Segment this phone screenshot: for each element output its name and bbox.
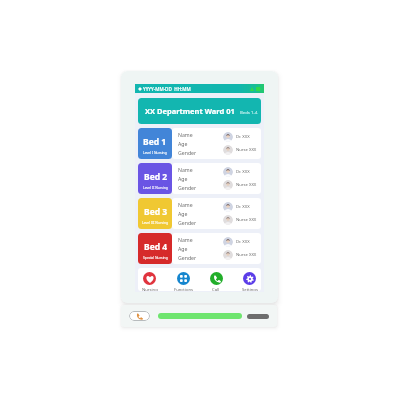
staticText: XX Department Ward 01	[145, 106, 235, 116]
staticText: Beds 1-4	[240, 109, 258, 115]
staticText: Nurse XXX	[236, 147, 257, 153]
button[interactable]: XX Department Ward 01	[138, 98, 261, 124]
staticText: Gender	[178, 184, 197, 191]
staticText: Age	[178, 245, 188, 252]
staticText: Call	[212, 287, 220, 291]
staticText: Level I Nursing	[143, 150, 167, 155]
staticText: Dr. XXX	[236, 134, 250, 140]
staticText: Name	[178, 166, 193, 173]
button[interactable]: Functions	[177, 268, 190, 291]
button[interactable]: Call	[129, 311, 150, 321]
staticText: Gender	[178, 149, 197, 156]
staticText: Gender	[178, 254, 197, 261]
staticText: Level III Nursing	[142, 220, 169, 225]
staticText: Bed 3	[144, 206, 168, 218]
staticText: Bed 2	[144, 171, 168, 183]
button[interactable]: Bed 4	[138, 233, 261, 264]
staticText: Settings	[242, 287, 258, 291]
button[interactable]: Call	[210, 268, 223, 291]
staticText: Special Nursing	[143, 255, 168, 260]
staticText: Functions	[174, 287, 194, 291]
staticText: Name	[178, 201, 193, 208]
staticText: YYYY-MM-DD HH:MM	[143, 86, 191, 92]
staticText: Nurse XXX	[236, 252, 257, 258]
staticText: Gender	[178, 219, 197, 226]
staticText: Nursing	[142, 287, 158, 291]
staticText: Age	[178, 175, 188, 182]
staticText: Age	[178, 210, 188, 217]
staticText: Name	[178, 236, 193, 243]
button[interactable]: Nursing	[143, 268, 156, 291]
staticText: Dr. XXX	[236, 169, 250, 175]
staticText: Name	[178, 131, 193, 138]
button[interactable]: Bed 1	[138, 128, 261, 159]
staticText: Age	[178, 140, 188, 147]
button[interactable]: Bed 2	[138, 163, 261, 194]
staticText: Dr. XXX	[236, 204, 250, 210]
staticText: Level II Nursing	[143, 185, 168, 190]
staticText: Dr. XXX	[236, 239, 250, 245]
button[interactable]: Bed 3	[138, 198, 261, 229]
staticText: Nurse XXX	[236, 217, 257, 223]
staticText: Bed 1	[143, 136, 167, 148]
staticText: Nurse XXX	[236, 182, 257, 188]
staticText: Bed 4	[144, 241, 168, 253]
button[interactable]: Settings	[243, 268, 256, 291]
